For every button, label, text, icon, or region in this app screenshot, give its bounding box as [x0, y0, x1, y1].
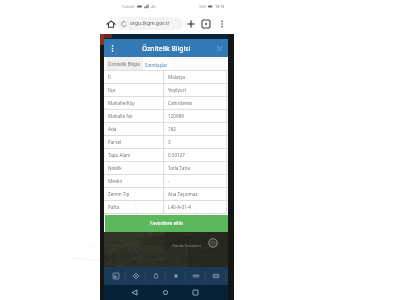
button[interactable]: Place marker: [146, 267, 166, 285]
staticText: Öznitelik Bilgisi: [108, 61, 141, 67]
button[interactable]: Close: [213, 42, 226, 55]
staticText: Favorilere ekle: [150, 220, 183, 227]
button[interactable]: Recents: [189, 286, 202, 299]
staticText: 19:13: [215, 4, 225, 9]
staticText: orgu.tkgm.gov.tr: [130, 20, 170, 27]
staticText: Turkcell: [122, 4, 135, 9]
staticText: Ana Taşınmaz: [168, 191, 198, 197]
button[interactable]: Measure distance: [186, 267, 206, 285]
button[interactable]: Öznitelik Bilgisi: [106, 57, 143, 71]
button[interactable]: orgu.tkgm.gov.tr: [117, 17, 183, 30]
button[interactable]: Back: [128, 286, 141, 299]
staticText: Yeşilyurt: [168, 87, 187, 93]
button[interactable]: Tabs: [198, 16, 213, 31]
button[interactable]: My location: [166, 267, 186, 285]
staticText: Sınırdaşlar: [145, 62, 168, 68]
staticText: Mevkii: [108, 178, 122, 184]
button[interactable]: Base map layers: [106, 267, 126, 285]
staticText: Malatya: [168, 74, 186, 80]
staticText: Tapu Alanı: [108, 152, 131, 158]
staticText: İl: [108, 74, 111, 80]
staticText: Öznitelik Bilgisi: [142, 44, 191, 53]
staticText: 182: [168, 126, 176, 132]
staticText: Tarla Tarla: [168, 165, 191, 171]
button[interactable]: Home: [159, 286, 172, 299]
staticText: Zemin Tip: [108, 191, 130, 197]
button[interactable]: New tab: [183, 16, 198, 31]
staticText: Ada: [108, 126, 117, 132]
staticText: %98: [199, 4, 206, 9]
staticText: Mahalle No: [108, 113, 133, 119]
button[interactable]: Select location: [126, 267, 146, 285]
staticText: Harita Terimleri: [172, 243, 202, 248]
staticText: 3: [168, 139, 171, 145]
staticText: 4G: [151, 4, 156, 9]
staticText: Parsel: [108, 139, 122, 145]
staticText: 0.30127: [168, 152, 185, 158]
staticText: L40-A-01-4: [168, 204, 191, 210]
staticText: Mahalle/Köy: [108, 100, 135, 106]
staticText: -: [168, 178, 170, 184]
staticText: İlçe: [108, 87, 116, 93]
staticText: Çahırderesi: [168, 100, 193, 106]
staticText: 120999: [168, 113, 184, 119]
button[interactable]: Menu: [106, 42, 119, 55]
staticText: Nitelik: [108, 165, 122, 171]
button[interactable]: Navigation: [206, 267, 226, 285]
button[interactable]: More options: [216, 18, 228, 30]
staticText: Pafta: [108, 204, 120, 210]
button[interactable]: Favorilere ekle: [105, 215, 228, 232]
button[interactable]: Home: [104, 17, 117, 30]
button[interactable]: Sınırdaşlar: [143, 58, 170, 71]
